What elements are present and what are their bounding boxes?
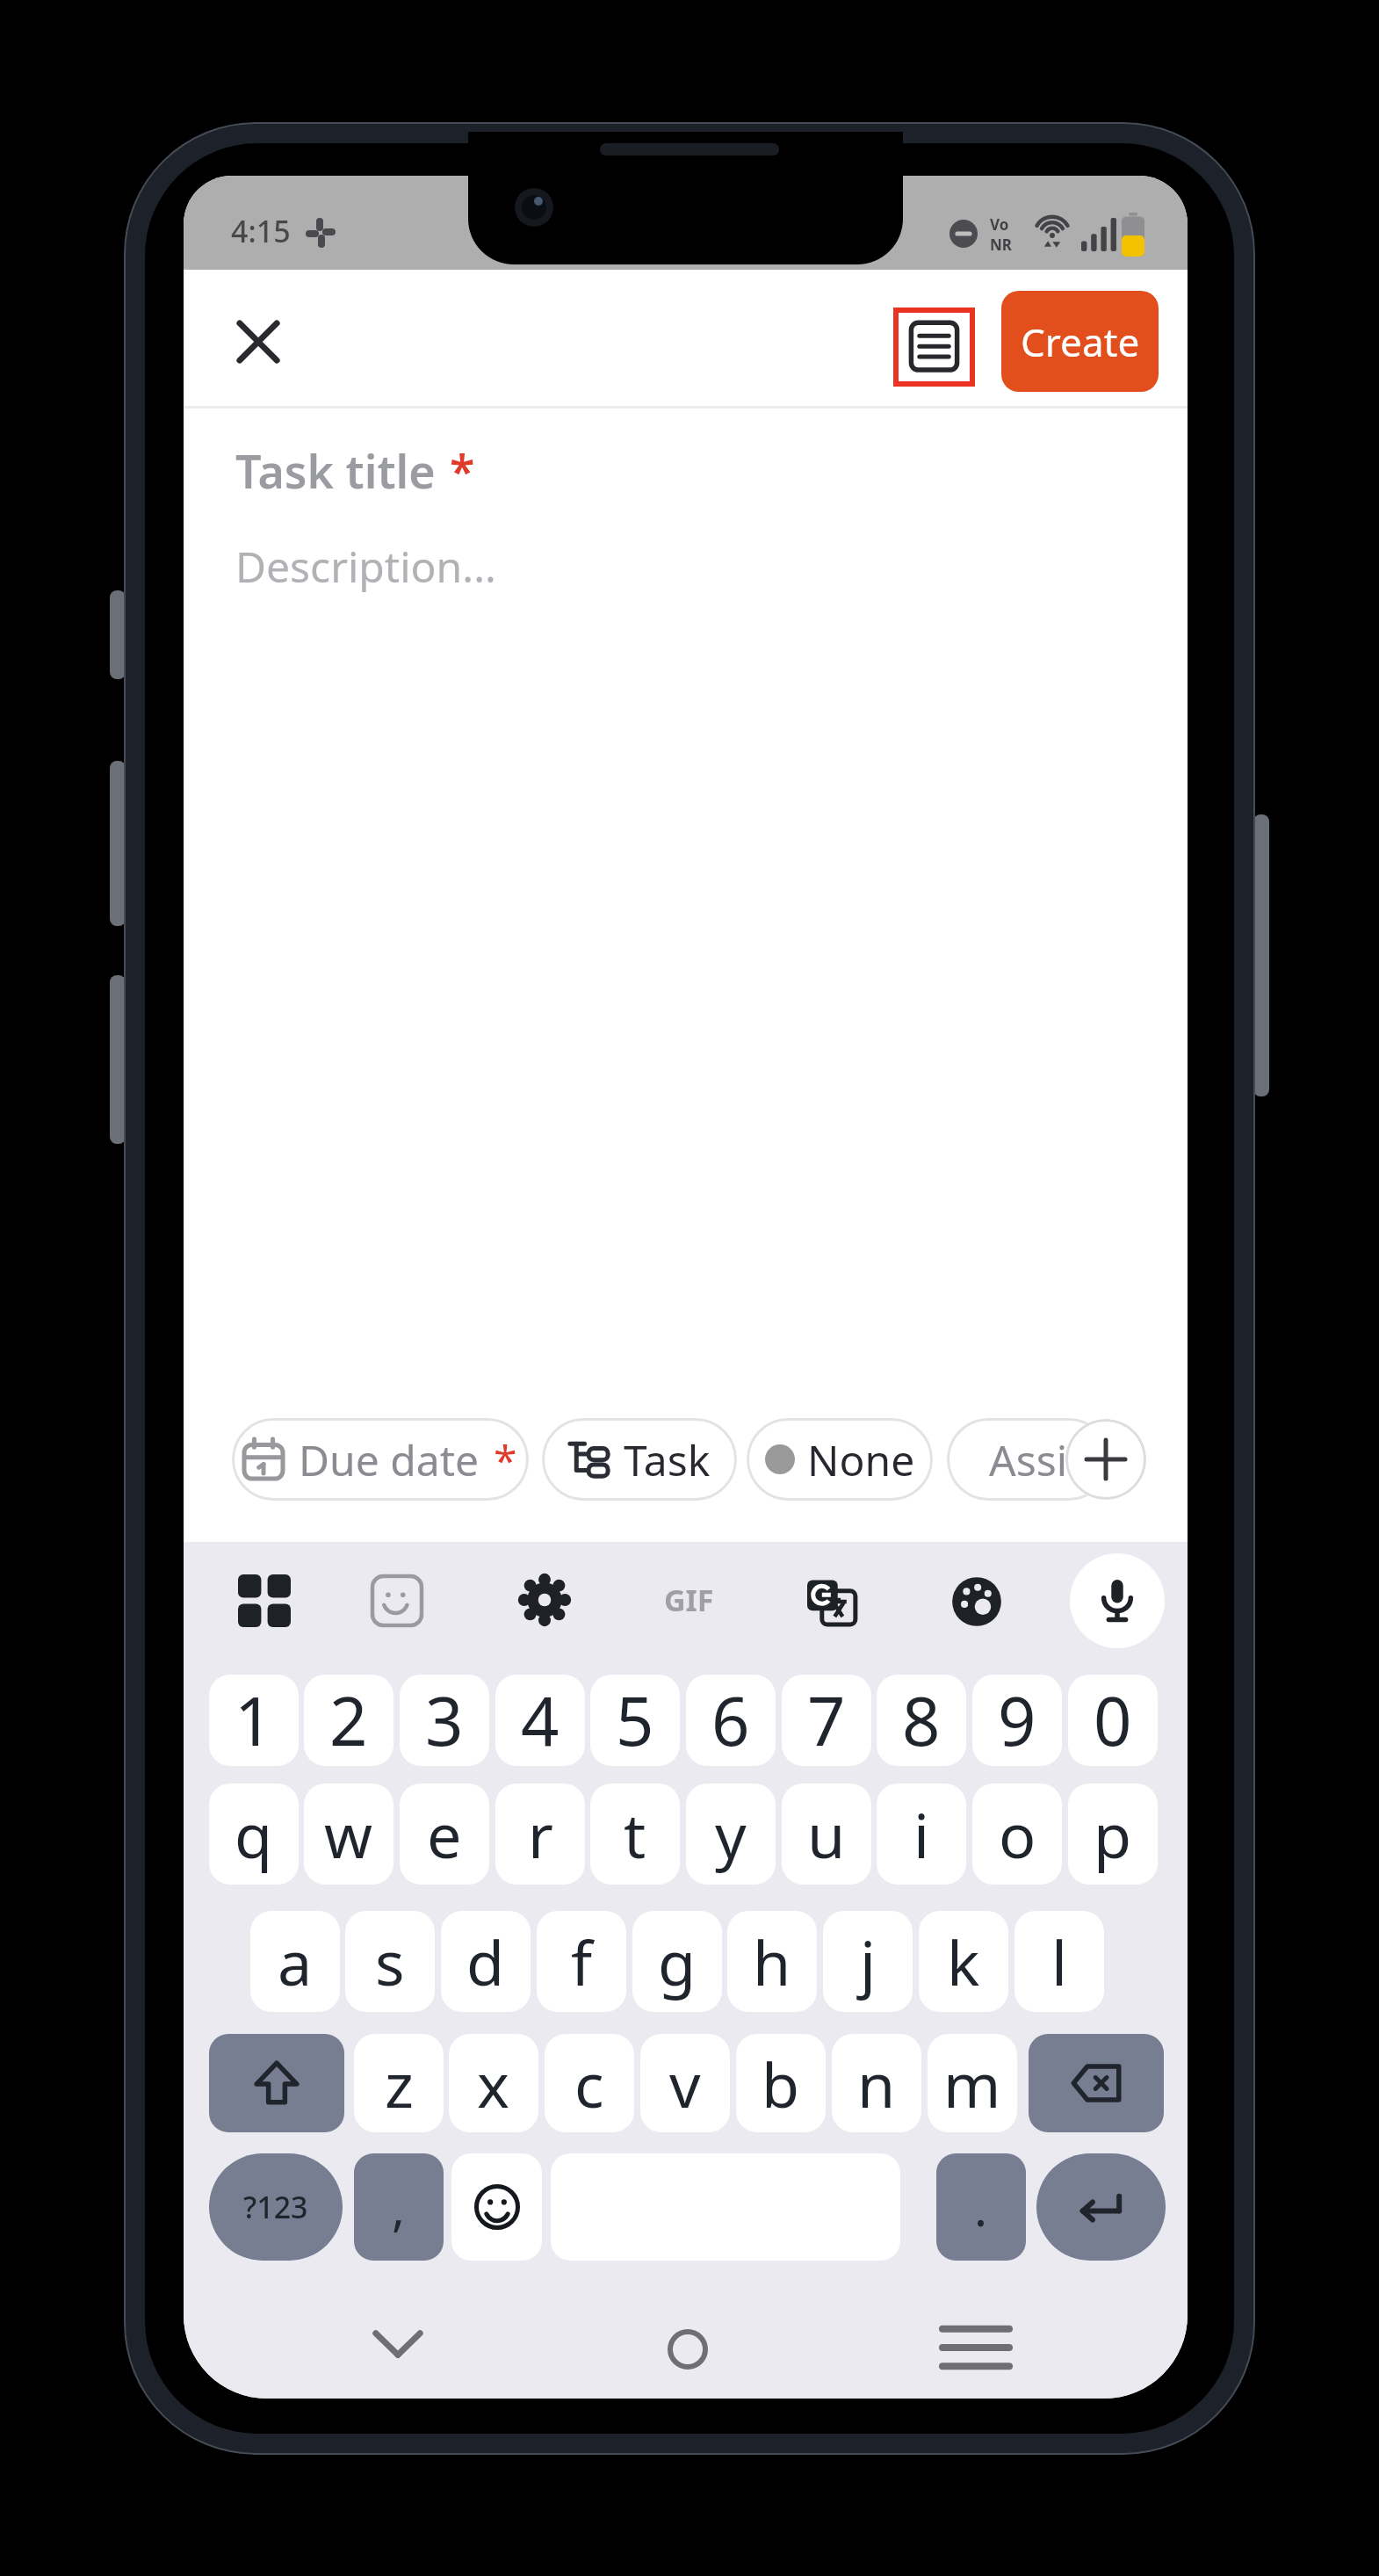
button[interactable]: m [928,2034,1017,2132]
staticText: w [324,1792,373,1876]
button[interactable]: 8 [877,1675,966,1766]
staticText: d [466,1920,505,2003]
staticText: p [1094,1792,1132,1876]
staticText: n [857,2042,896,2125]
staticText: f [571,1920,593,2003]
button[interactable] [209,2034,344,2132]
button[interactable] [807,1576,856,1625]
button[interactable] [668,2329,708,2370]
button[interactable]: n [832,2034,921,2132]
button[interactable]: ?123 [209,2153,343,2261]
button[interactable]: , [354,2153,444,2261]
button[interactable]: d [441,1911,531,2012]
staticText: Task [624,1431,711,1488]
staticText: a [278,1920,313,2003]
staticText: 0 [1094,1675,1132,1766]
staticText: 7 [807,1675,846,1766]
button[interactable]: o [972,1784,1062,1885]
button[interactable] [451,2153,542,2261]
button[interactable]: 2 [304,1675,393,1766]
button[interactable]: . [936,2153,1026,2261]
button[interactable] [896,310,972,384]
button[interactable]: l [1014,1911,1104,2012]
staticText: GIF [664,1580,714,1620]
staticText: i [913,1792,930,1876]
staticText: , [392,2174,406,2240]
button[interactable]: Create [1001,291,1159,392]
button[interactable]: x [449,2034,538,2132]
button[interactable] [1065,1419,1146,1500]
button[interactable]: 5 [590,1675,680,1766]
staticText: Description... [235,538,496,595]
button[interactable] [1029,2034,1164,2132]
staticText: 6 [711,1675,750,1766]
button[interactable]: Due date [232,1418,529,1501]
button[interactable]: b [736,2034,826,2132]
staticText: 9 [998,1675,1036,1766]
staticText: 4:15 [231,211,291,251]
button[interactable]: j [823,1911,913,2012]
button[interactable] [238,1574,291,1627]
button[interactable]: q [209,1784,299,1885]
button[interactable]: 6 [686,1675,776,1766]
button[interactable]: y [686,1784,776,1885]
staticText: ?123 [243,2187,308,2227]
staticText: b [762,2042,800,2125]
button[interactable]: 4 [495,1675,585,1766]
button[interactable]: 3 [400,1675,489,1766]
staticText: 1 [235,1675,273,1766]
staticText: o [999,1792,1036,1876]
button[interactable]: GIF [649,1574,728,1625]
button[interactable]: e [400,1784,489,1885]
button[interactable] [229,313,287,371]
button[interactable] [372,2325,424,2363]
button[interactable]: 0 [1068,1675,1158,1766]
staticText: None [807,1431,915,1488]
button[interactable] [1070,1553,1165,1648]
button[interactable]: Task [542,1418,737,1501]
button[interactable]: c [545,2034,634,2132]
staticText: x [477,2042,510,2125]
staticText: * [450,439,475,502]
button[interactable]: None [747,1418,933,1501]
staticText: Due date [299,1431,480,1488]
button[interactable] [372,1576,422,1625]
button[interactable]: 9 [972,1675,1062,1766]
staticText: Vo [990,214,1009,235]
staticText: z [385,2042,414,2125]
staticText: y [715,1792,747,1876]
staticText: k [947,1920,980,2003]
staticText: 5 [616,1675,654,1766]
button[interactable] [942,2323,1009,2372]
staticText: l [1051,1920,1068,2003]
staticText: NR [990,235,1012,255]
button[interactable]: 7 [782,1675,871,1766]
staticText: 8 [902,1675,941,1766]
staticText: u [807,1792,846,1876]
button[interactable] [519,1574,570,1625]
staticText: s [375,1920,405,2003]
button[interactable]: h [727,1911,817,2012]
button[interactable]: p [1068,1784,1158,1885]
button[interactable]: f [537,1911,626,2012]
button[interactable]: v [640,2034,730,2132]
button[interactable]: k [919,1911,1008,2012]
staticText: Assi [989,1431,1068,1488]
button[interactable]: w [304,1784,393,1885]
button[interactable] [951,1576,1002,1627]
button[interactable]: s [345,1911,435,2012]
staticText: 3 [425,1675,464,1766]
button[interactable] [1036,2153,1166,2261]
button[interactable]: t [590,1784,680,1885]
staticText: * [494,1431,517,1488]
staticText: q [235,1792,273,1876]
button[interactable]: i [877,1784,966,1885]
button[interactable]: 1 [209,1675,299,1766]
button[interactable]: r [495,1784,585,1885]
button[interactable]: g [632,1911,722,2012]
button[interactable]: Assi [947,1418,1110,1501]
button[interactable]: u [782,1784,871,1885]
button[interactable]: z [354,2034,444,2132]
button[interactable]: a [250,1911,340,2012]
